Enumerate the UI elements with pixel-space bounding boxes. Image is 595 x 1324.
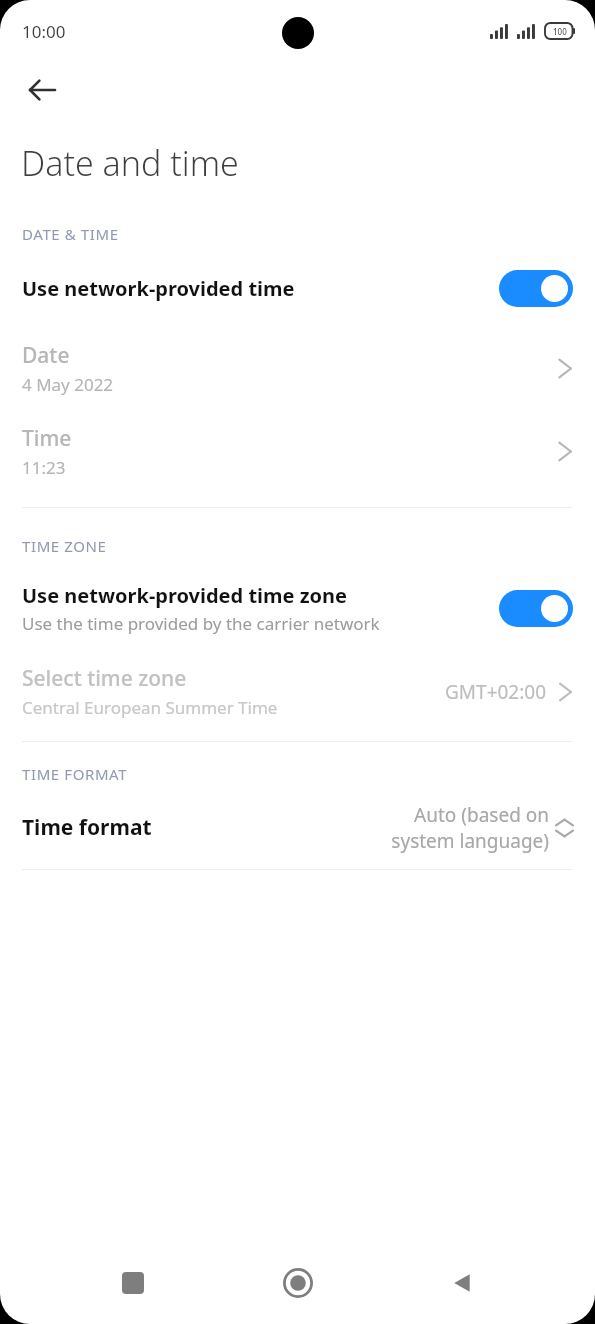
button[interactable]: Back bbox=[14, 62, 70, 118]
button[interactable]: Toggle Use network-provided time bbox=[499, 270, 573, 307]
staticText: Time format bbox=[22, 813, 391, 842]
button[interactable]: Use network-provided time zone bbox=[0, 578, 595, 639]
staticText: Use network-provided time bbox=[22, 275, 295, 302]
button[interactable]: Select time zone bbox=[0, 664, 595, 719]
button[interactable]: Recents bbox=[101, 1251, 165, 1315]
button[interactable]: Use network-provided time bbox=[0, 266, 595, 311]
button[interactable]: Date bbox=[0, 341, 595, 396]
button[interactable]: Time bbox=[0, 424, 595, 479]
staticText: Date bbox=[22, 341, 70, 370]
button[interactable]: Toggle Use network-provided time zone bbox=[499, 590, 573, 627]
button[interactable]: Home bbox=[266, 1251, 330, 1315]
staticText: Central European Summer Time bbox=[22, 696, 278, 719]
other: Expand bbox=[556, 813, 573, 843]
staticText: GMT+02:00 bbox=[445, 679, 547, 705]
staticText: TIME ZONE bbox=[22, 536, 107, 556]
staticText: TIME FORMAT bbox=[22, 764, 128, 784]
staticText: Use the time provided by the carrier net… bbox=[22, 612, 380, 635]
staticText: 4 May 2022 bbox=[22, 373, 114, 396]
staticText: Select time zone bbox=[22, 664, 187, 693]
staticText: 10:00 bbox=[22, 20, 66, 43]
button[interactable]: Back bbox=[430, 1251, 494, 1315]
staticText: DATE & TIME bbox=[22, 224, 119, 244]
button[interactable]: Time format bbox=[0, 802, 595, 853]
staticText: 11:23 bbox=[22, 456, 66, 479]
staticText: 100 bbox=[553, 26, 567, 37]
staticText: Time bbox=[22, 424, 72, 453]
staticText: Auto (based on system language) bbox=[391, 802, 549, 853]
staticText: Date and time bbox=[21, 140, 239, 186]
staticText: Use network-provided time zone bbox=[22, 582, 347, 609]
